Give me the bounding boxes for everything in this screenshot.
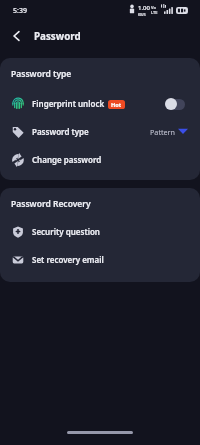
staticText: LTE	[151, 10, 158, 15]
button[interactable]: Fingerprint unlock switch	[165, 98, 185, 110]
staticText: Hot	[111, 101, 122, 109]
staticText: 1.00	[138, 4, 150, 12]
button[interactable]: Back	[5, 25, 27, 47]
staticText: Password type	[32, 126, 89, 137]
button[interactable]: Password type	[0, 118, 200, 146]
staticText: Set recovery email	[32, 254, 104, 265]
staticText: Password Recovery	[11, 198, 91, 210]
button[interactable]: Security question	[0, 218, 200, 246]
staticText: Pattern	[150, 127, 176, 137]
staticText: Change password	[32, 154, 102, 165]
staticText: Security question	[32, 226, 100, 237]
staticText: Vo	[151, 5, 156, 10]
staticText: Fingerprint unlock	[32, 98, 105, 109]
button[interactable]: Set recovery email	[0, 246, 200, 274]
staticText: KB/S	[138, 12, 146, 17]
staticText: Password	[34, 30, 81, 43]
button[interactable]: Fingerprint unlock	[0, 90, 200, 118]
button[interactable]: Change password	[0, 146, 200, 174]
staticText: Password type	[11, 68, 72, 80]
staticText: 5:39	[13, 6, 27, 16]
